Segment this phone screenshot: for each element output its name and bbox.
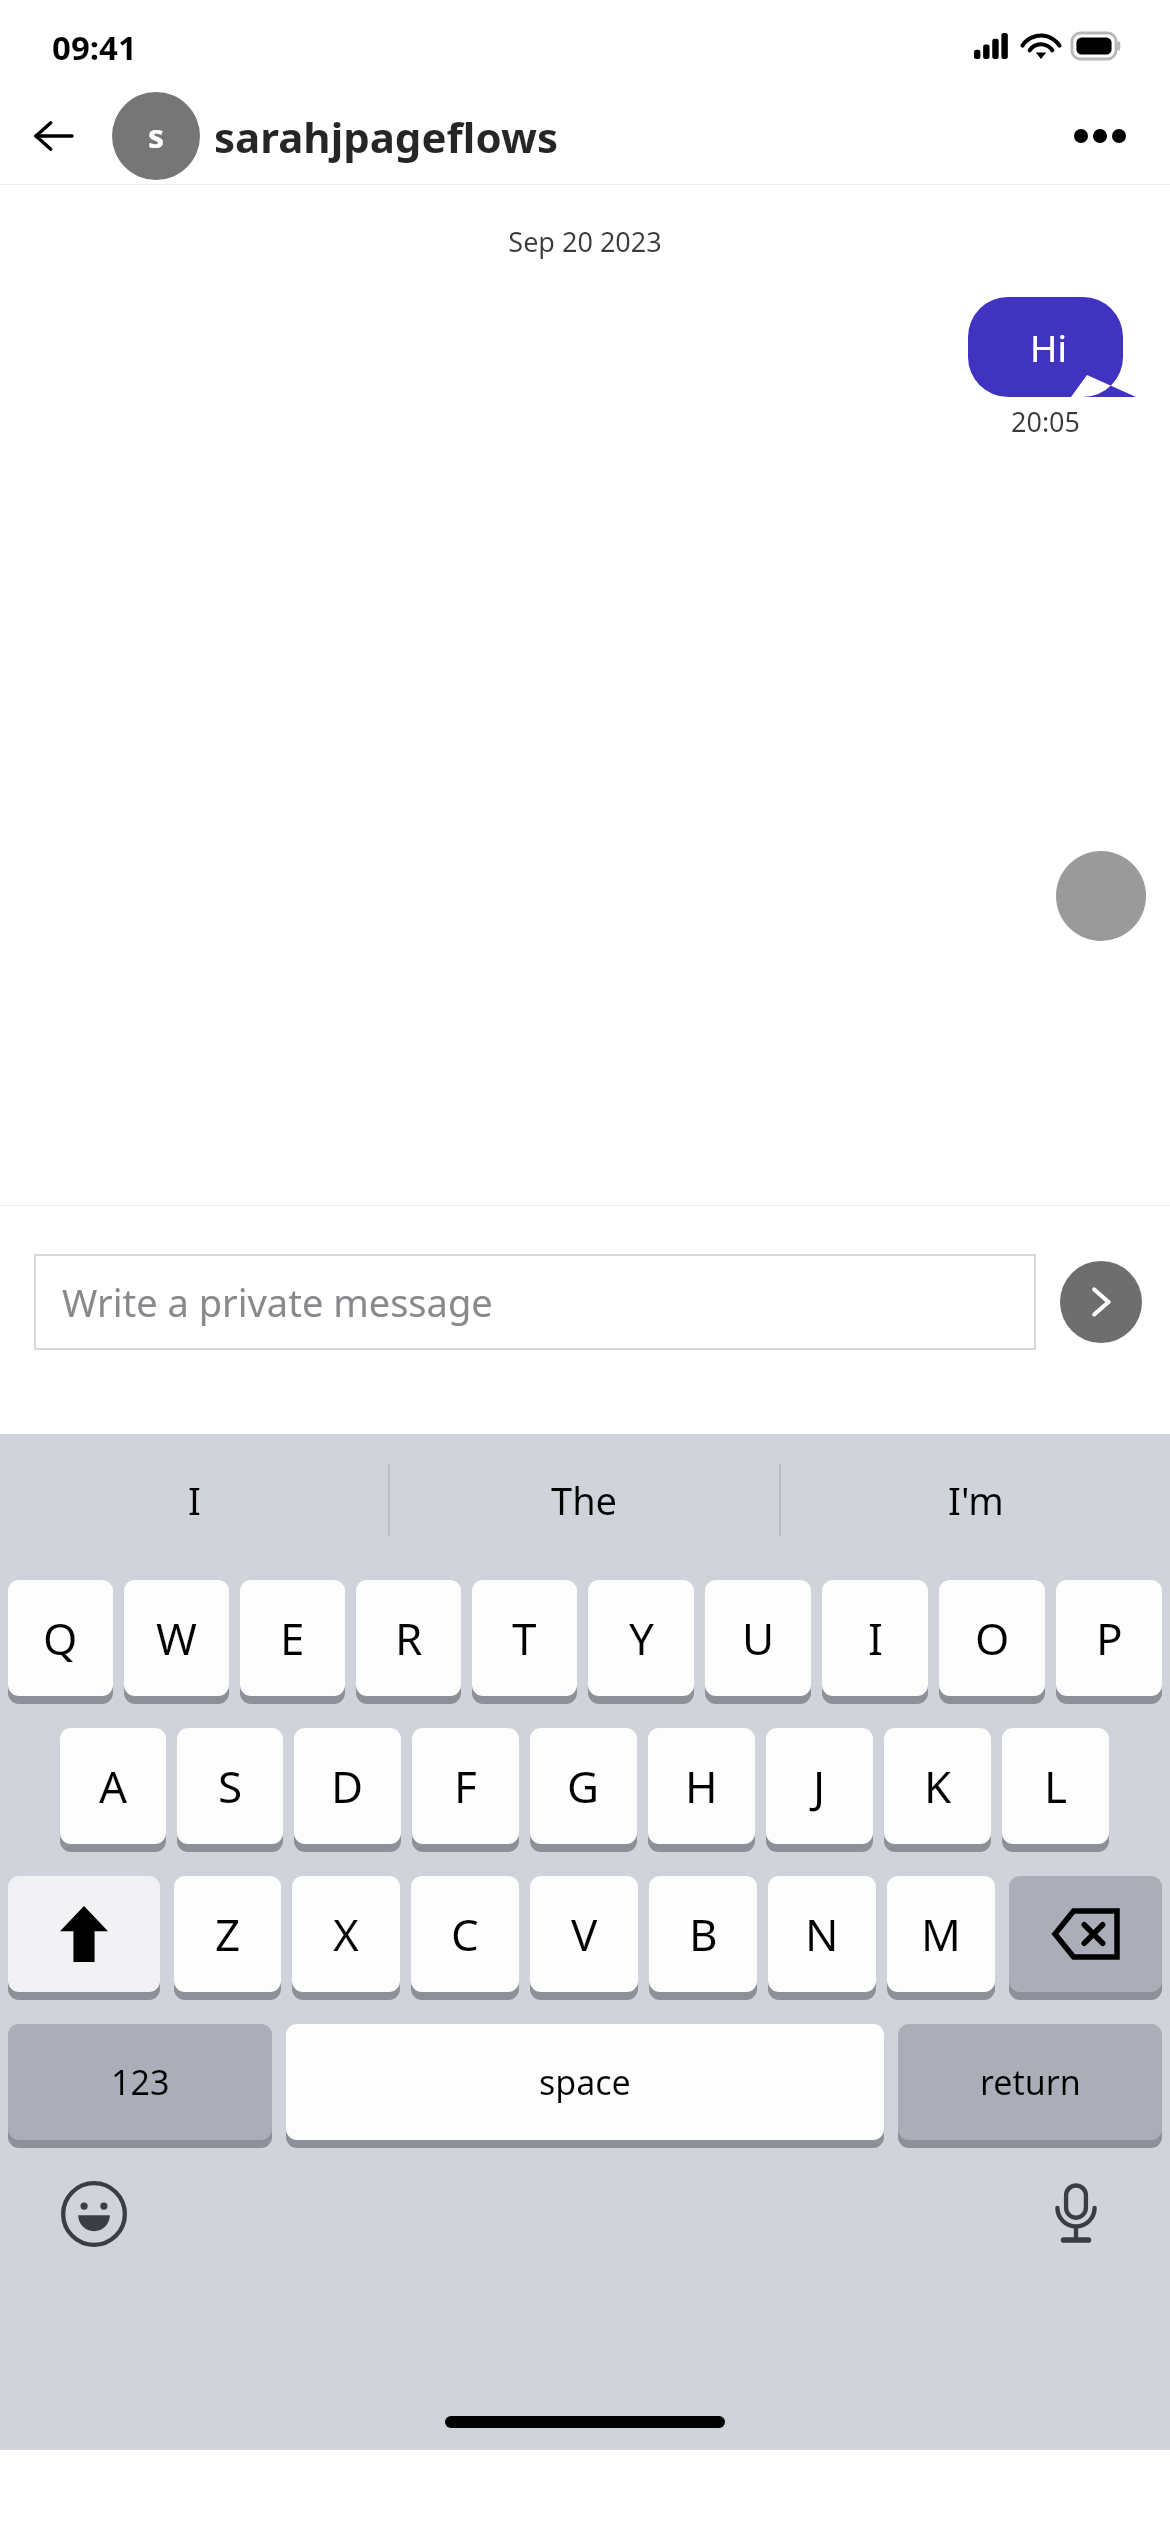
button[interactable]: W [124, 1578, 229, 1704]
staticText: s [148, 114, 165, 158]
button[interactable]: Back [18, 100, 90, 172]
button[interactable]: Z [174, 1874, 281, 2000]
button[interactable]: C [411, 1874, 519, 2000]
staticText: B [689, 1904, 718, 1964]
button[interactable]: The [390, 1434, 779, 1566]
staticText: sarahjpageflows [214, 108, 558, 165]
staticText: I [188, 1474, 201, 1526]
button[interactable]: I'm [781, 1434, 1170, 1566]
staticText: N [805, 1904, 839, 1964]
staticText: U [742, 1608, 775, 1668]
staticText: R [395, 1608, 423, 1668]
button[interactable]: F [412, 1726, 519, 1852]
staticText: D [331, 1756, 364, 1816]
staticText: Q [43, 1608, 78, 1668]
staticText: Y [629, 1608, 654, 1668]
staticText: E [280, 1608, 305, 1668]
button[interactable]: 123 [8, 2022, 272, 2148]
staticText: I'm [948, 1474, 1004, 1526]
staticText: Write a private message [62, 1276, 493, 1328]
staticText: 09:41 [52, 25, 137, 70]
staticText: H [685, 1756, 718, 1816]
button[interactable]: Send [1060, 1261, 1142, 1343]
staticText: T [512, 1608, 537, 1668]
staticText: K [924, 1756, 952, 1816]
button[interactable]: P [1056, 1578, 1162, 1704]
button[interactable]: E [240, 1578, 345, 1704]
button[interactable]: space [286, 2022, 884, 2148]
button[interactable]: T [472, 1578, 577, 1704]
button[interactable]: G [530, 1726, 637, 1852]
button[interactable]: Shift [8, 1874, 160, 2000]
button[interactable]: I [822, 1578, 928, 1704]
button[interactable]: return [898, 2022, 1162, 2148]
button[interactable]: H [648, 1726, 755, 1852]
button[interactable]: Emoji [56, 2176, 132, 2252]
staticText: Hi [1030, 322, 1067, 372]
staticText: L [1044, 1756, 1068, 1816]
staticText: 20:05 [1011, 403, 1081, 440]
button[interactable]: N [768, 1874, 876, 2000]
button[interactable]: U [705, 1578, 811, 1704]
staticText: X [333, 1904, 359, 1964]
staticText: J [813, 1756, 826, 1816]
staticText: C [451, 1904, 479, 1964]
button[interactable]: X [292, 1874, 400, 2000]
button[interactable]: A [60, 1726, 166, 1852]
button[interactable]: Hi [968, 297, 1136, 397]
button[interactable]: V [530, 1874, 638, 2000]
staticText: V [571, 1904, 598, 1964]
button[interactable]: Q [8, 1578, 113, 1704]
staticText: O [975, 1608, 1010, 1668]
button[interactable]: L [1002, 1726, 1109, 1852]
button[interactable]: Y [588, 1578, 694, 1704]
button[interactable]: M [887, 1874, 995, 2000]
staticText: Z [215, 1904, 241, 1964]
staticText: P [1096, 1608, 1123, 1668]
button[interactable]: J [766, 1726, 873, 1852]
staticText: G [567, 1756, 600, 1816]
staticText: Sep 20 2023 [0, 223, 1170, 260]
button[interactable]: S [177, 1726, 283, 1852]
staticText: return [980, 2059, 1081, 2105]
button[interactable]: O [939, 1578, 1045, 1704]
staticText: I [868, 1608, 883, 1668]
staticText: W [156, 1608, 197, 1668]
staticText: A [99, 1756, 128, 1816]
staticText: S [218, 1756, 243, 1816]
button[interactable]: K [884, 1726, 991, 1852]
button[interactable]: D [294, 1726, 401, 1852]
staticText: space [539, 2059, 631, 2105]
button[interactable]: Write a private message [34, 1254, 1036, 1350]
button[interactable]: Dictate [1038, 2176, 1114, 2252]
staticText: F [454, 1756, 477, 1816]
button[interactable]: More options [1064, 100, 1136, 172]
staticText: M [921, 1904, 961, 1964]
button[interactable]: I [0, 1434, 388, 1566]
button[interactable]: B [649, 1874, 757, 2000]
button[interactable]: s [112, 92, 558, 180]
staticText: 123 [111, 2059, 170, 2105]
button[interactable]: Backspace [1009, 1874, 1162, 2000]
button[interactable]: R [356, 1578, 461, 1704]
staticText: The [551, 1474, 618, 1526]
